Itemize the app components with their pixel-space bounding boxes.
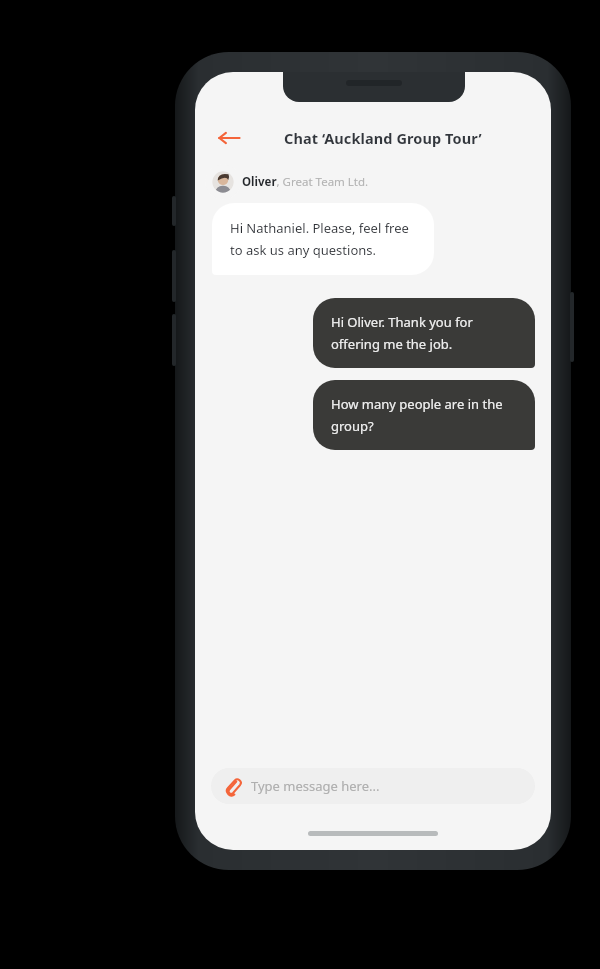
other: Attach file <box>223 777 242 796</box>
button[interactable]: Oliver, Great Team Ltd. <box>212 171 551 193</box>
staticText: Hi Oliver. Thank you for offering me the… <box>331 313 517 353</box>
staticText: How many people are in the group? <box>331 395 517 435</box>
staticText: Chat ‘Auckland Group Tour’ <box>284 128 482 148</box>
button[interactable]: Hi Oliver. Thank you for offering me the… <box>313 298 535 368</box>
staticText: Oliver, Great Team Ltd. <box>242 174 369 190</box>
staticText: Type message here... <box>251 777 380 795</box>
button[interactable]: How many people are in the group? <box>313 380 535 450</box>
button[interactable]: Attach file <box>211 768 535 804</box>
button[interactable]: Hi Nathaniel. Please, feel free to ask u… <box>212 203 434 275</box>
staticText: Hi Nathaniel. Please, feel free to ask u… <box>230 219 416 259</box>
button[interactable]: Back <box>207 120 251 156</box>
